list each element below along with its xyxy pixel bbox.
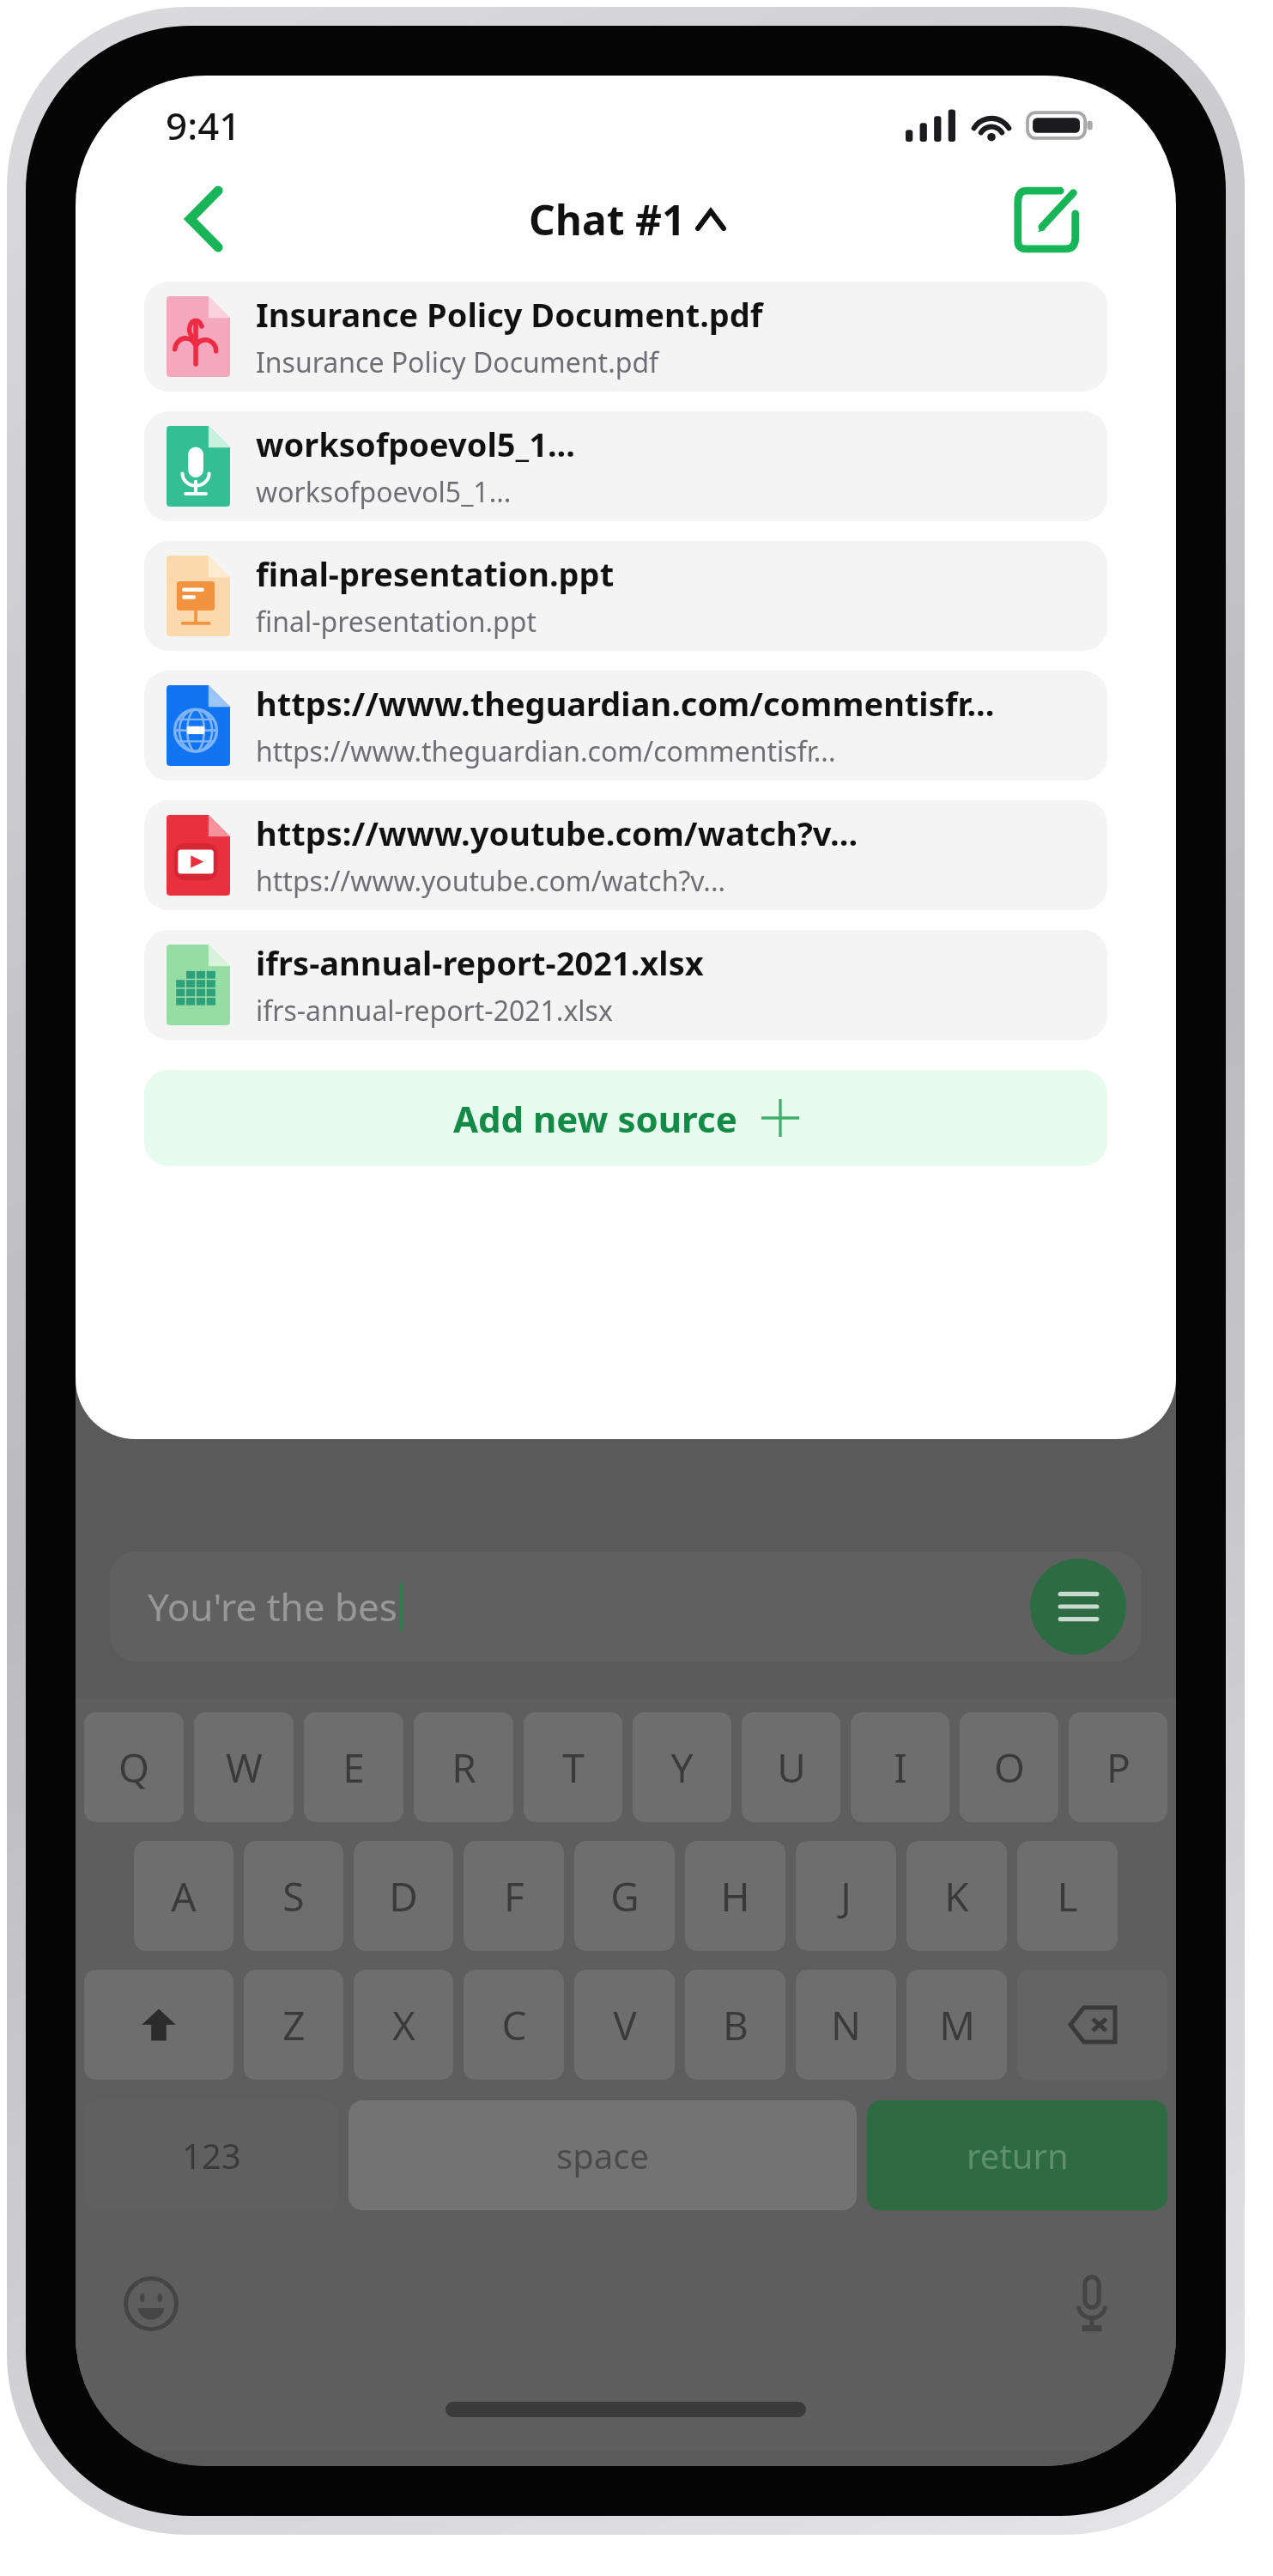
button[interactable]: Emoji xyxy=(117,2269,185,2338)
button[interactable]: G xyxy=(574,1841,675,1951)
button[interactable]: Add new source xyxy=(144,1070,1107,1166)
staticText: 9:41 xyxy=(166,100,241,151)
button[interactable] xyxy=(1017,1970,1167,2080)
staticText: G xyxy=(610,1869,640,1923)
staticText: space xyxy=(556,2132,649,2178)
staticText: U xyxy=(777,1741,806,1795)
staticText: https://www.theguardian.com/commentisfr.… xyxy=(256,732,836,770)
button[interactable]: X xyxy=(354,1970,453,2080)
staticText: Add new source xyxy=(453,1094,737,1143)
staticText: Z xyxy=(282,1998,306,2052)
staticText: R xyxy=(452,1741,476,1795)
button[interactable]: U xyxy=(742,1712,840,1822)
staticText: Insurance Policy Document.pdf xyxy=(256,292,763,337)
button[interactable]: Sources xyxy=(1030,1558,1126,1655)
button[interactable]: R xyxy=(414,1712,513,1822)
staticText: Q xyxy=(118,1741,149,1795)
staticText: You're the bes xyxy=(148,1581,397,1632)
staticText: O xyxy=(994,1741,1025,1795)
staticText: I xyxy=(894,1741,907,1795)
staticText: X xyxy=(392,1998,415,2052)
button[interactable]: V xyxy=(574,1970,675,2080)
button[interactable]: O xyxy=(960,1712,1058,1822)
button[interactable]: K xyxy=(906,1841,1007,1951)
button[interactable]: New chat xyxy=(1003,174,1092,264)
staticText: Y xyxy=(670,1741,694,1795)
button[interactable]: space xyxy=(349,2100,857,2210)
button[interactable]: Insurance Policy Document.pdf xyxy=(144,282,1107,392)
staticText: F xyxy=(504,1869,524,1923)
staticText: S xyxy=(282,1869,305,1923)
button[interactable]: D xyxy=(354,1841,453,1951)
button[interactable]: ifrs-annual-report-2021.xlsx xyxy=(144,930,1107,1040)
staticText: ifrs-annual-report-2021.xlsx xyxy=(256,940,704,985)
button[interactable]: Chat #1 xyxy=(529,191,724,247)
button[interactable] xyxy=(84,1970,233,2080)
staticText: ifrs-annual-report-2021.xlsx xyxy=(256,992,613,1030)
button[interactable]: M xyxy=(906,1970,1007,2080)
button[interactable]: L xyxy=(1017,1841,1118,1951)
staticText: P xyxy=(1106,1741,1131,1795)
button[interactable]: S xyxy=(244,1841,343,1951)
button[interactable]: J xyxy=(796,1841,896,1951)
button[interactable]: Back xyxy=(165,178,247,260)
staticText: D xyxy=(389,1869,418,1923)
button[interactable]: final-presentation.ppt xyxy=(144,541,1107,651)
staticText: E xyxy=(342,1741,365,1795)
staticText: V xyxy=(613,1998,637,2052)
staticText: C xyxy=(501,1998,527,2052)
button[interactable]: Y xyxy=(633,1712,731,1822)
button[interactable]: P xyxy=(1069,1712,1167,1822)
button[interactable]: https://www.theguardian.com/commentisfr.… xyxy=(144,671,1107,781)
button[interactable]: return xyxy=(867,2100,1167,2210)
button[interactable]: 123 xyxy=(84,2100,338,2210)
staticText: M xyxy=(939,1998,975,2052)
staticText: 123 xyxy=(182,2132,241,2178)
staticText: W xyxy=(226,1741,263,1795)
staticText: J xyxy=(840,1869,852,1923)
button[interactable]: F xyxy=(464,1841,564,1951)
button[interactable]: Dictate xyxy=(1058,2269,1126,2338)
button[interactable]: You're the bes xyxy=(110,1552,1142,1662)
button[interactable]: Z xyxy=(244,1970,343,2080)
button[interactable]: B xyxy=(685,1970,785,2080)
button[interactable]: T xyxy=(524,1712,622,1822)
staticText: https://www.theguardian.com/commentisfr.… xyxy=(256,681,995,726)
staticText: return xyxy=(967,2132,1069,2178)
staticText: T xyxy=(562,1741,585,1795)
button[interactable]: N xyxy=(796,1970,896,2080)
button[interactable]: A xyxy=(134,1841,233,1951)
staticText: K xyxy=(944,1869,969,1923)
staticText: Chat #1 xyxy=(529,191,686,247)
staticText: H xyxy=(720,1869,750,1923)
button[interactable]: H xyxy=(685,1841,785,1951)
button[interactable]: https://www.youtube.com/watch?v... xyxy=(144,800,1107,910)
staticText: worksofpoevol5_1... xyxy=(256,422,575,466)
button[interactable]: W xyxy=(194,1712,294,1822)
staticText: A xyxy=(171,1869,197,1923)
button[interactable]: C xyxy=(464,1970,564,2080)
staticText: final-presentation.ppt xyxy=(256,603,536,641)
staticText: https://www.youtube.com/watch?v... xyxy=(256,811,858,855)
button[interactable]: Q xyxy=(84,1712,184,1822)
button[interactable]: E xyxy=(304,1712,403,1822)
button[interactable]: I xyxy=(851,1712,949,1822)
staticText: N xyxy=(831,1998,861,2052)
staticText: B xyxy=(723,1998,749,2052)
staticText: Insurance Policy Document.pdf xyxy=(256,343,659,381)
staticText: worksofpoevol5_1... xyxy=(256,473,512,511)
staticText: L xyxy=(1057,1869,1078,1923)
staticText: final-presentation.ppt xyxy=(256,551,615,596)
staticText: https://www.youtube.com/watch?v... xyxy=(256,862,726,900)
button[interactable]: worksofpoevol5_1... xyxy=(144,411,1107,521)
